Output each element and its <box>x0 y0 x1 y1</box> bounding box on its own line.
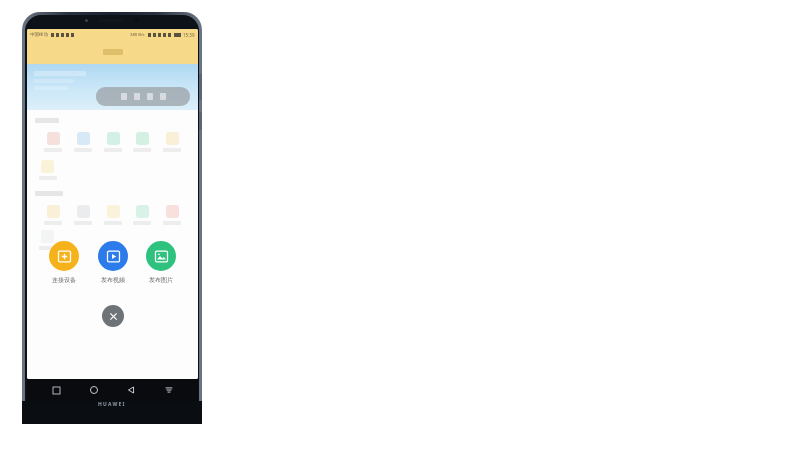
staticText: 15:39 <box>183 32 195 38</box>
staticText: 发布视频 <box>101 276 125 284</box>
button[interactable]: 返回 <box>123 382 139 398</box>
button[interactable] <box>32 230 63 250</box>
button[interactable] <box>163 205 181 225</box>
button[interactable]: 关闭 <box>102 305 124 327</box>
button[interactable] <box>104 205 122 225</box>
button[interactable] <box>133 132 151 152</box>
button[interactable]: 最近任务 <box>48 382 64 398</box>
staticText: 380 B/s <box>130 32 145 38</box>
button[interactable] <box>163 132 181 152</box>
staticText: 发布图片 <box>149 276 173 284</box>
button[interactable]: 连接设备 <box>47 241 81 284</box>
button[interactable] <box>104 132 122 152</box>
staticText: 中国移动 <box>30 32 48 38</box>
button[interactable] <box>133 205 151 225</box>
button[interactable] <box>32 160 63 180</box>
button[interactable]: 主页 <box>86 382 102 398</box>
button[interactable]: 发布图片 <box>144 241 178 284</box>
button[interactable] <box>74 205 92 225</box>
staticText: HUAWEI <box>98 401 126 408</box>
button[interactable]: 发布视频 <box>96 241 130 284</box>
button[interactable] <box>74 132 92 152</box>
staticText: 连接设备 <box>52 276 76 284</box>
button[interactable] <box>44 132 62 152</box>
button[interactable] <box>44 205 62 225</box>
button[interactable]: 菜单 <box>161 382 177 398</box>
